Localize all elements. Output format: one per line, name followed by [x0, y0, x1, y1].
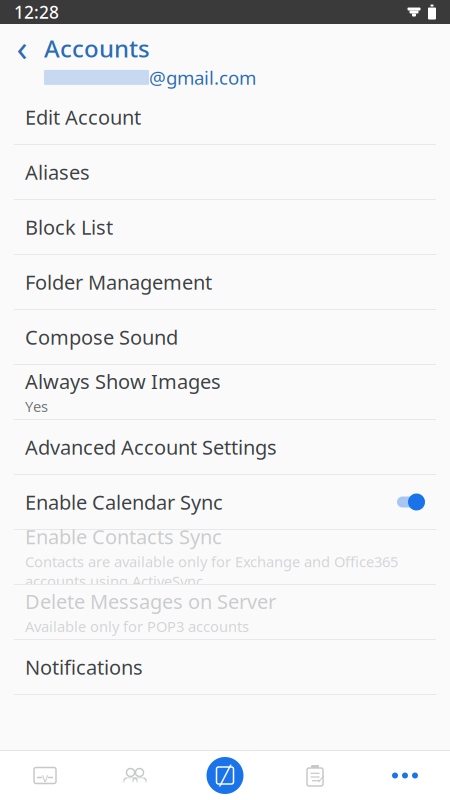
button[interactable]: Advanced Account Settings — [0, 420, 450, 474]
staticText: Always Show Images — [25, 368, 221, 395]
button[interactable]: Enable Calendar Sync — [0, 475, 450, 529]
staticText: Compose Sound — [25, 324, 178, 350]
button[interactable]: Delete Messages on Server — [0, 585, 450, 639]
button[interactable]: Edit Account — [0, 90, 450, 144]
button[interactable]: Notifications — [0, 640, 450, 694]
button[interactable]: Tasks — [270, 751, 360, 800]
staticText: Contacts are available only for Exchange… — [25, 552, 398, 591]
staticText: Enable Calendar Sync — [25, 489, 223, 515]
button[interactable]: Folder Management — [0, 255, 450, 309]
staticText: Aliases — [25, 159, 90, 185]
button[interactable]: Compose Sound — [0, 310, 450, 364]
button[interactable]: Back — [0, 24, 44, 70]
button[interactable]: Enable Contacts Sync — [0, 530, 450, 584]
staticText: ✓ — [316, 772, 326, 786]
button[interactable]: Contacts — [90, 751, 180, 800]
staticText: Accounts — [44, 32, 150, 64]
button[interactable]: Aliases — [0, 145, 450, 199]
button[interactable]: Always Show Images — [0, 365, 450, 419]
staticText: Advanced Account Settings — [25, 434, 277, 460]
staticText: ‹ — [16, 23, 27, 71]
button[interactable]: More — [360, 751, 450, 800]
button[interactable]: Compose — [180, 751, 270, 800]
staticText: Yes — [25, 396, 48, 416]
staticText: ╱ — [219, 765, 230, 786]
staticText: v — [42, 769, 48, 785]
staticText: Block List — [25, 214, 113, 240]
staticText: Folder Management — [25, 269, 212, 295]
staticText: Edit Account — [25, 104, 141, 130]
staticText: Notifications — [25, 654, 143, 680]
staticText: Enable Contacts Sync — [25, 523, 222, 550]
staticText: Delete Messages on Server — [25, 588, 276, 615]
staticText: 12:28 — [14, 0, 59, 23]
button[interactable]: Block List — [0, 200, 450, 254]
staticText: Available only for POP3 accounts — [25, 616, 249, 636]
button[interactable]: Inbox — [0, 751, 90, 800]
staticText: @gmail.com — [149, 65, 256, 90]
